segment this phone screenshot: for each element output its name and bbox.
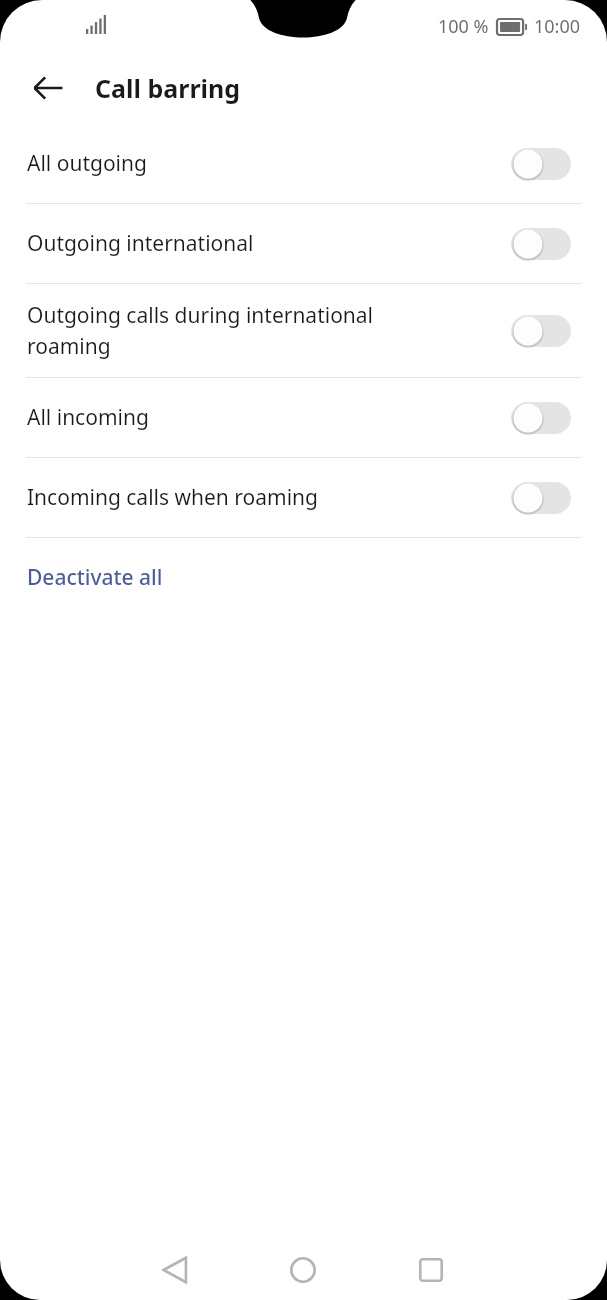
- button[interactable]: Incoming calls when roaming: [0, 458, 607, 537]
- staticText: Outgoing calls during international roam…: [27, 301, 427, 360]
- button[interactable]: All incoming: [0, 378, 607, 457]
- button[interactable]: Back: [149, 1244, 201, 1296]
- staticText: All outgoing: [27, 149, 147, 178]
- button[interactable]: Back: [22, 62, 74, 114]
- button[interactable]: Recent apps: [405, 1244, 457, 1296]
- staticText: Outgoing international: [27, 229, 254, 258]
- button[interactable]: All outgoing: [0, 124, 607, 203]
- button[interactable]: Deactivate all: [0, 538, 607, 616]
- staticText: Incoming calls when roaming: [27, 483, 318, 512]
- staticText: Call barring: [95, 71, 241, 105]
- staticText: All incoming: [27, 403, 149, 432]
- staticText: Deactivate all: [27, 563, 163, 592]
- staticText: 10:00: [534, 14, 581, 39]
- button[interactable]: Home: [277, 1244, 329, 1296]
- button[interactable]: Outgoing international: [0, 204, 607, 283]
- staticText: 100 %: [438, 14, 489, 39]
- button[interactable]: Outgoing calls during international roam…: [0, 284, 607, 377]
